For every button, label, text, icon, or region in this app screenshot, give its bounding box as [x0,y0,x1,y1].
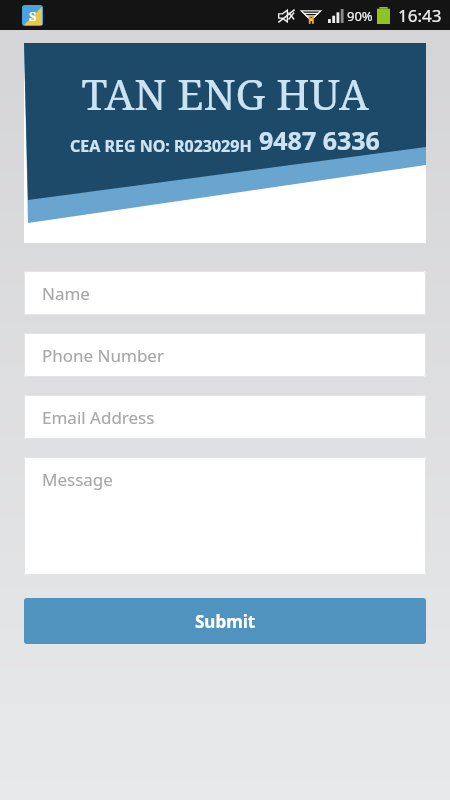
button[interactable]: Email Address [24,395,426,439]
staticText: Email Address [42,406,155,429]
button[interactable]: Message [24,457,426,575]
staticText: Submit [195,610,256,633]
staticText: 16:43 [398,4,442,27]
button[interactable]: Submit [24,598,426,644]
staticText: 9487 6336 [259,123,380,157]
button[interactable]: Name [24,271,426,315]
staticText: Phone Number [42,344,164,367]
staticText: CEA REG NO: R023029H [70,135,252,157]
staticText: TAN ENG HUA [34,65,416,122]
staticText: 90% [347,7,373,25]
button[interactable]: TAN ENG HUA [24,43,426,243]
staticText: Name [42,282,90,305]
staticText: Message [42,468,113,491]
staticText: S [29,7,37,25]
button[interactable]: Phone Number [24,333,426,377]
